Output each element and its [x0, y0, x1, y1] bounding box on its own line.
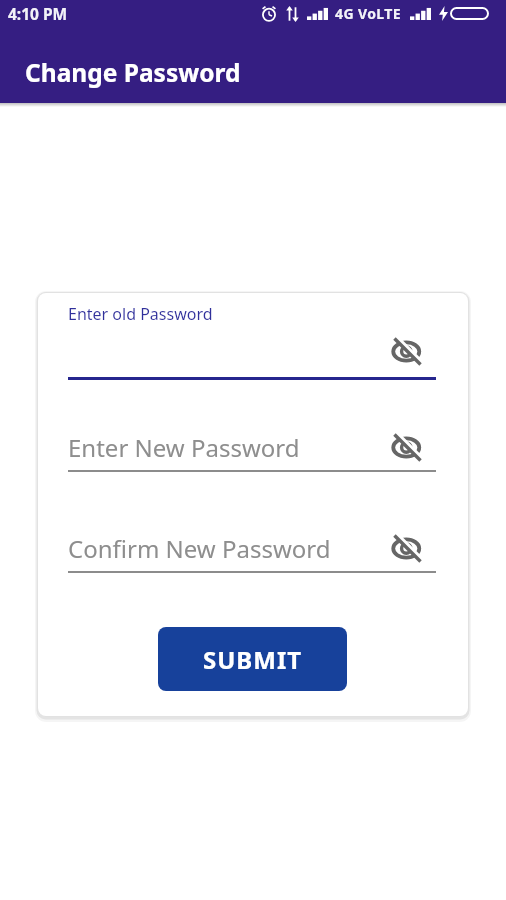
staticText: Enter New Password	[68, 431, 300, 464]
staticText: SUBMIT	[203, 643, 303, 676]
staticText: Enter old Password	[68, 303, 213, 325]
button[interactable]	[392, 338, 423, 364]
button[interactable]	[392, 535, 423, 561]
button[interactable]: SUBMIT	[158, 627, 347, 691]
staticText: Confirm New Password	[68, 532, 331, 565]
button[interactable]	[392, 434, 423, 460]
staticText: 4:10 PM	[8, 3, 68, 24]
staticText: Change Password	[25, 56, 241, 89]
staticText: 4G VoLTE	[335, 4, 402, 23]
